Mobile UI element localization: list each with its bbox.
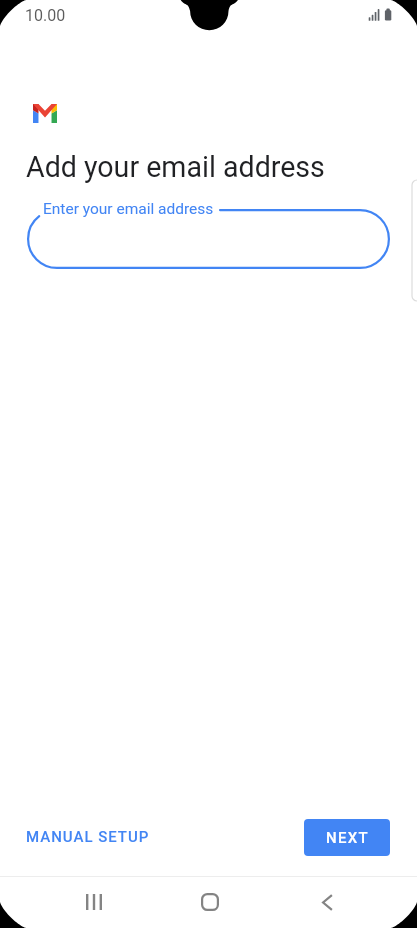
staticText: NEXT [326,829,369,847]
button[interactable]: Recent apps [70,878,118,926]
button[interactable]: Back [303,878,351,926]
staticText: 10.00 [25,6,66,25]
button[interactable]: Home [186,878,234,926]
button[interactable]: MANUAL SETUP [12,818,164,856]
button[interactable]: NEXT [304,819,390,856]
staticText: MANUAL SETUP [26,828,150,846]
staticText: Add your email address [26,150,325,184]
staticText: Enter your email address [43,200,214,218]
